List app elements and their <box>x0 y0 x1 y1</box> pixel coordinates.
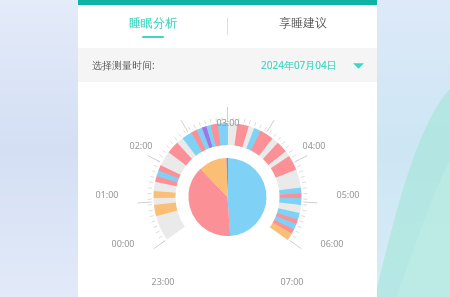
button[interactable]: 选择测量时间: <box>78 48 377 82</box>
staticText: 01:00 <box>95 188 119 200</box>
staticText: 02:00 <box>129 139 153 151</box>
staticText: 23:00 <box>151 275 175 287</box>
staticText: 06:00 <box>320 237 344 249</box>
staticText: 00:00 <box>111 237 135 249</box>
staticText: 05:00 <box>336 188 360 200</box>
staticText: 07:00 <box>280 275 304 287</box>
staticText: 睡眠分析 <box>129 15 177 30</box>
staticText: 2024年07月04日 <box>261 58 337 72</box>
staticText: 04:00 <box>302 139 326 151</box>
staticText: 03:00 <box>216 116 240 128</box>
button[interactable]: Select date <box>351 58 365 72</box>
staticText: 享睡建议 <box>279 15 327 30</box>
staticText: 选择测量时间: <box>92 58 155 72</box>
button[interactable]: 享睡建议 <box>228 5 377 48</box>
button[interactable]: 睡眠分析 <box>78 5 227 48</box>
